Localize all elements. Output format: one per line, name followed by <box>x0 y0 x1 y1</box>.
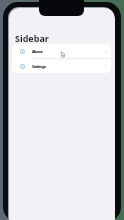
other: Settings icon <box>20 64 25 69</box>
staticText: Sidebar <box>15 32 49 44</box>
staticText: Settings <box>33 64 47 69</box>
other: About icon <box>20 49 25 54</box>
staticText: About <box>32 49 42 54</box>
staticText: Settings <box>32 64 46 69</box>
button[interactable]: About icon <box>12 44 111 58</box>
staticText: About <box>32 49 42 54</box>
staticText: About <box>33 49 43 54</box>
staticText: Settings <box>32 64 46 69</box>
button[interactable]: Settings icon <box>12 59 111 73</box>
